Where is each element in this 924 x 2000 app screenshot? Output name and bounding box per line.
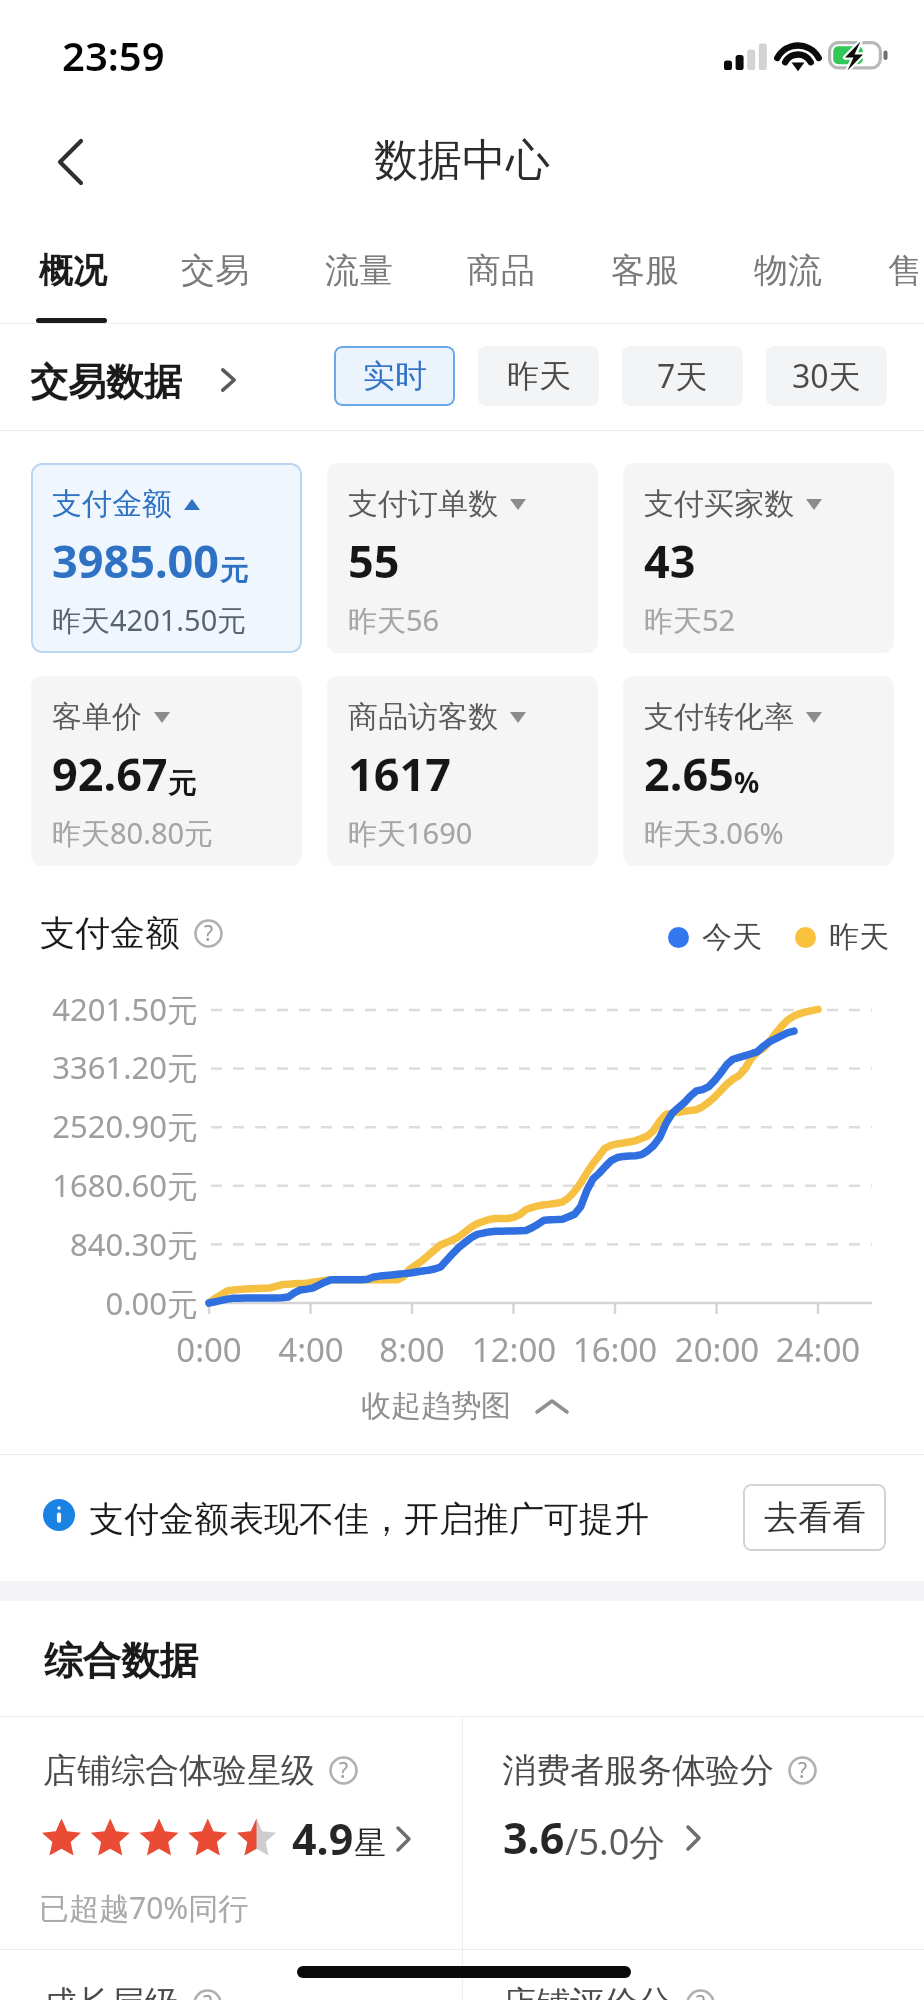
staticText: 1617 [348, 743, 451, 804]
staticText: 3.6 [503, 1808, 565, 1867]
button[interactable]: 收起趋势图 [361, 1386, 569, 1426]
staticText: 已超越70%同行 [39, 1887, 249, 1928]
staticText: 交易 [181, 249, 249, 292]
staticText: 支付金额 [52, 485, 172, 523]
button[interactable]: 成长层级 [43, 1982, 222, 2000]
button[interactable]: 售 [834, 230, 924, 323]
staticText: /5.0分 [565, 1817, 666, 1866]
staticText: 7天 [657, 354, 708, 398]
staticText: 2520.90元 [18, 1105, 198, 1147]
staticText: 数据中心 [374, 133, 550, 188]
button[interactable]: 昨天 [478, 346, 599, 406]
button[interactable]: 概况 [2, 230, 144, 323]
button[interactable]: 消费者服务体验分 [463, 1717, 924, 1949]
staticText: 昨天 [829, 918, 889, 956]
staticText: 24:00 [758, 1327, 878, 1372]
staticText: 23:59 [62, 28, 165, 82]
button[interactable]: 实时 [334, 346, 455, 406]
staticText: % [734, 763, 760, 801]
staticText: 收起趋势图 [361, 1387, 511, 1425]
button[interactable]: 店铺评价分 [502, 1982, 715, 2000]
staticText: 4201.50元 [18, 988, 198, 1030]
staticText: 昨天 [507, 356, 571, 396]
staticText: 0:00 [149, 1327, 269, 1372]
staticText: 客服 [611, 249, 679, 292]
staticText: 商品 [467, 249, 535, 292]
staticText: ? [696, 1989, 706, 2000]
button[interactable]: 30天 [766, 346, 887, 406]
staticText: ? [339, 1756, 349, 1784]
staticText: 元 [220, 553, 248, 588]
staticText: 16:00 [555, 1327, 675, 1372]
staticText: 12:00 [454, 1327, 574, 1372]
staticText: 元 [168, 766, 196, 801]
staticText: 840.30元 [18, 1223, 198, 1265]
staticText: 商品访客数 [348, 698, 498, 736]
button[interactable]: 商品访客数 [327, 676, 598, 866]
staticText: 今天 [702, 918, 762, 956]
staticText: 消费者服务体验分 [502, 1749, 774, 1792]
staticText: 星 [354, 1823, 386, 1863]
staticText: 流量 [325, 249, 393, 292]
staticText: 昨天80.80元 [52, 813, 214, 853]
button[interactable]: 7天 [622, 346, 743, 406]
staticText: 4.9 [292, 1809, 354, 1868]
staticText: 92.67 [52, 743, 168, 804]
button[interactable]: Back [32, 126, 108, 198]
button[interactable]: 支付转化率 [623, 676, 894, 866]
staticText: 支付转化率 [644, 698, 794, 736]
staticText: 成长层级 [43, 1982, 179, 2000]
staticText: 店铺评价分 [502, 1982, 672, 2000]
staticText: 售 [888, 249, 922, 292]
staticText: 3985.00 [52, 530, 220, 591]
staticText: 3361.20元 [18, 1046, 198, 1088]
staticText: 2.65 [644, 743, 734, 804]
staticText: 支付买家数 [644, 485, 794, 523]
staticText: 实时 [363, 356, 427, 396]
staticText: 昨天4201.50元 [52, 600, 247, 640]
staticText: 4:00 [251, 1327, 371, 1372]
button[interactable]: 支付金额 [31, 463, 302, 653]
staticText: 支付金额 [40, 911, 180, 955]
button[interactable]: 流量 [288, 230, 430, 323]
button[interactable]: 商品 [430, 230, 572, 323]
button[interactable]: 店铺综合体验星级 [0, 1717, 462, 1949]
staticText: 昨天56 [348, 600, 440, 640]
staticText: 综合数据 [44, 1637, 198, 1686]
staticText: ? [203, 1989, 213, 2000]
staticText: ? [204, 919, 214, 947]
staticText: 店铺综合体验星级 [43, 1749, 315, 1792]
staticText: 交易数据 [30, 358, 182, 402]
button[interactable]: 交易 [144, 230, 286, 323]
staticText: 1680.60元 [18, 1164, 198, 1206]
staticText: 8:00 [352, 1327, 472, 1372]
button[interactable]: 交易数据 [30, 358, 236, 402]
staticText: 0.00元 [18, 1282, 198, 1324]
button[interactable]: 支付买家数 [623, 463, 894, 653]
staticText: 客单价 [52, 698, 142, 736]
staticText: 概况 [39, 249, 107, 292]
staticText: 30天 [792, 354, 861, 398]
staticText: 20:00 [657, 1327, 777, 1372]
button[interactable]: 客单价 [31, 676, 302, 866]
button[interactable]: 去看看 [743, 1484, 886, 1551]
staticText: 支付订单数 [348, 485, 498, 523]
staticText: 去看看 [764, 1496, 866, 1539]
button[interactable]: 客服 [574, 230, 716, 323]
staticText: ? [798, 1756, 808, 1784]
button[interactable]: 支付订单数 [327, 463, 598, 653]
staticText: 昨天1690 [348, 813, 473, 853]
button[interactable]: 物流 [717, 230, 859, 323]
staticText: 55 [348, 530, 400, 591]
staticText: 43 [644, 530, 696, 591]
staticText: 支付金额表现不佳，开启推广可提升 [89, 1497, 649, 1541]
staticText: 昨天3.06% [644, 813, 784, 853]
staticText: 物流 [754, 249, 822, 292]
staticText: 昨天52 [644, 600, 736, 640]
